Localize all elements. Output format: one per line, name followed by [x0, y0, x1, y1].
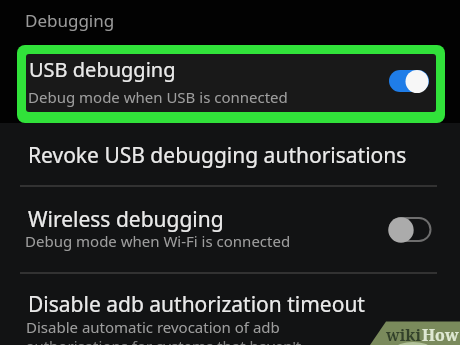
staticText: How [422, 324, 459, 345]
staticText: Debugging [25, 9, 115, 32]
staticText: Debug mode when Wi-Fi is connected [25, 231, 291, 251]
button[interactable] [385, 66, 435, 96]
button[interactable] [17, 45, 445, 123]
staticText: Debug mode when USB is connected [28, 87, 288, 107]
staticText: Disable automatic revocation of adb [26, 317, 280, 337]
staticText: authorisations for systems that haven't [26, 336, 302, 345]
button[interactable] [0, 187, 460, 272]
staticText: USB debugging [29, 56, 176, 83]
button[interactable] [0, 126, 460, 185]
staticText: Wireless debugging [28, 205, 224, 234]
staticText: Disable adb authorization timeout [28, 290, 365, 319]
button[interactable] [0, 274, 460, 345]
staticText: Revoke USB debugging authorisations [28, 141, 407, 170]
staticText: wiki [386, 324, 422, 345]
